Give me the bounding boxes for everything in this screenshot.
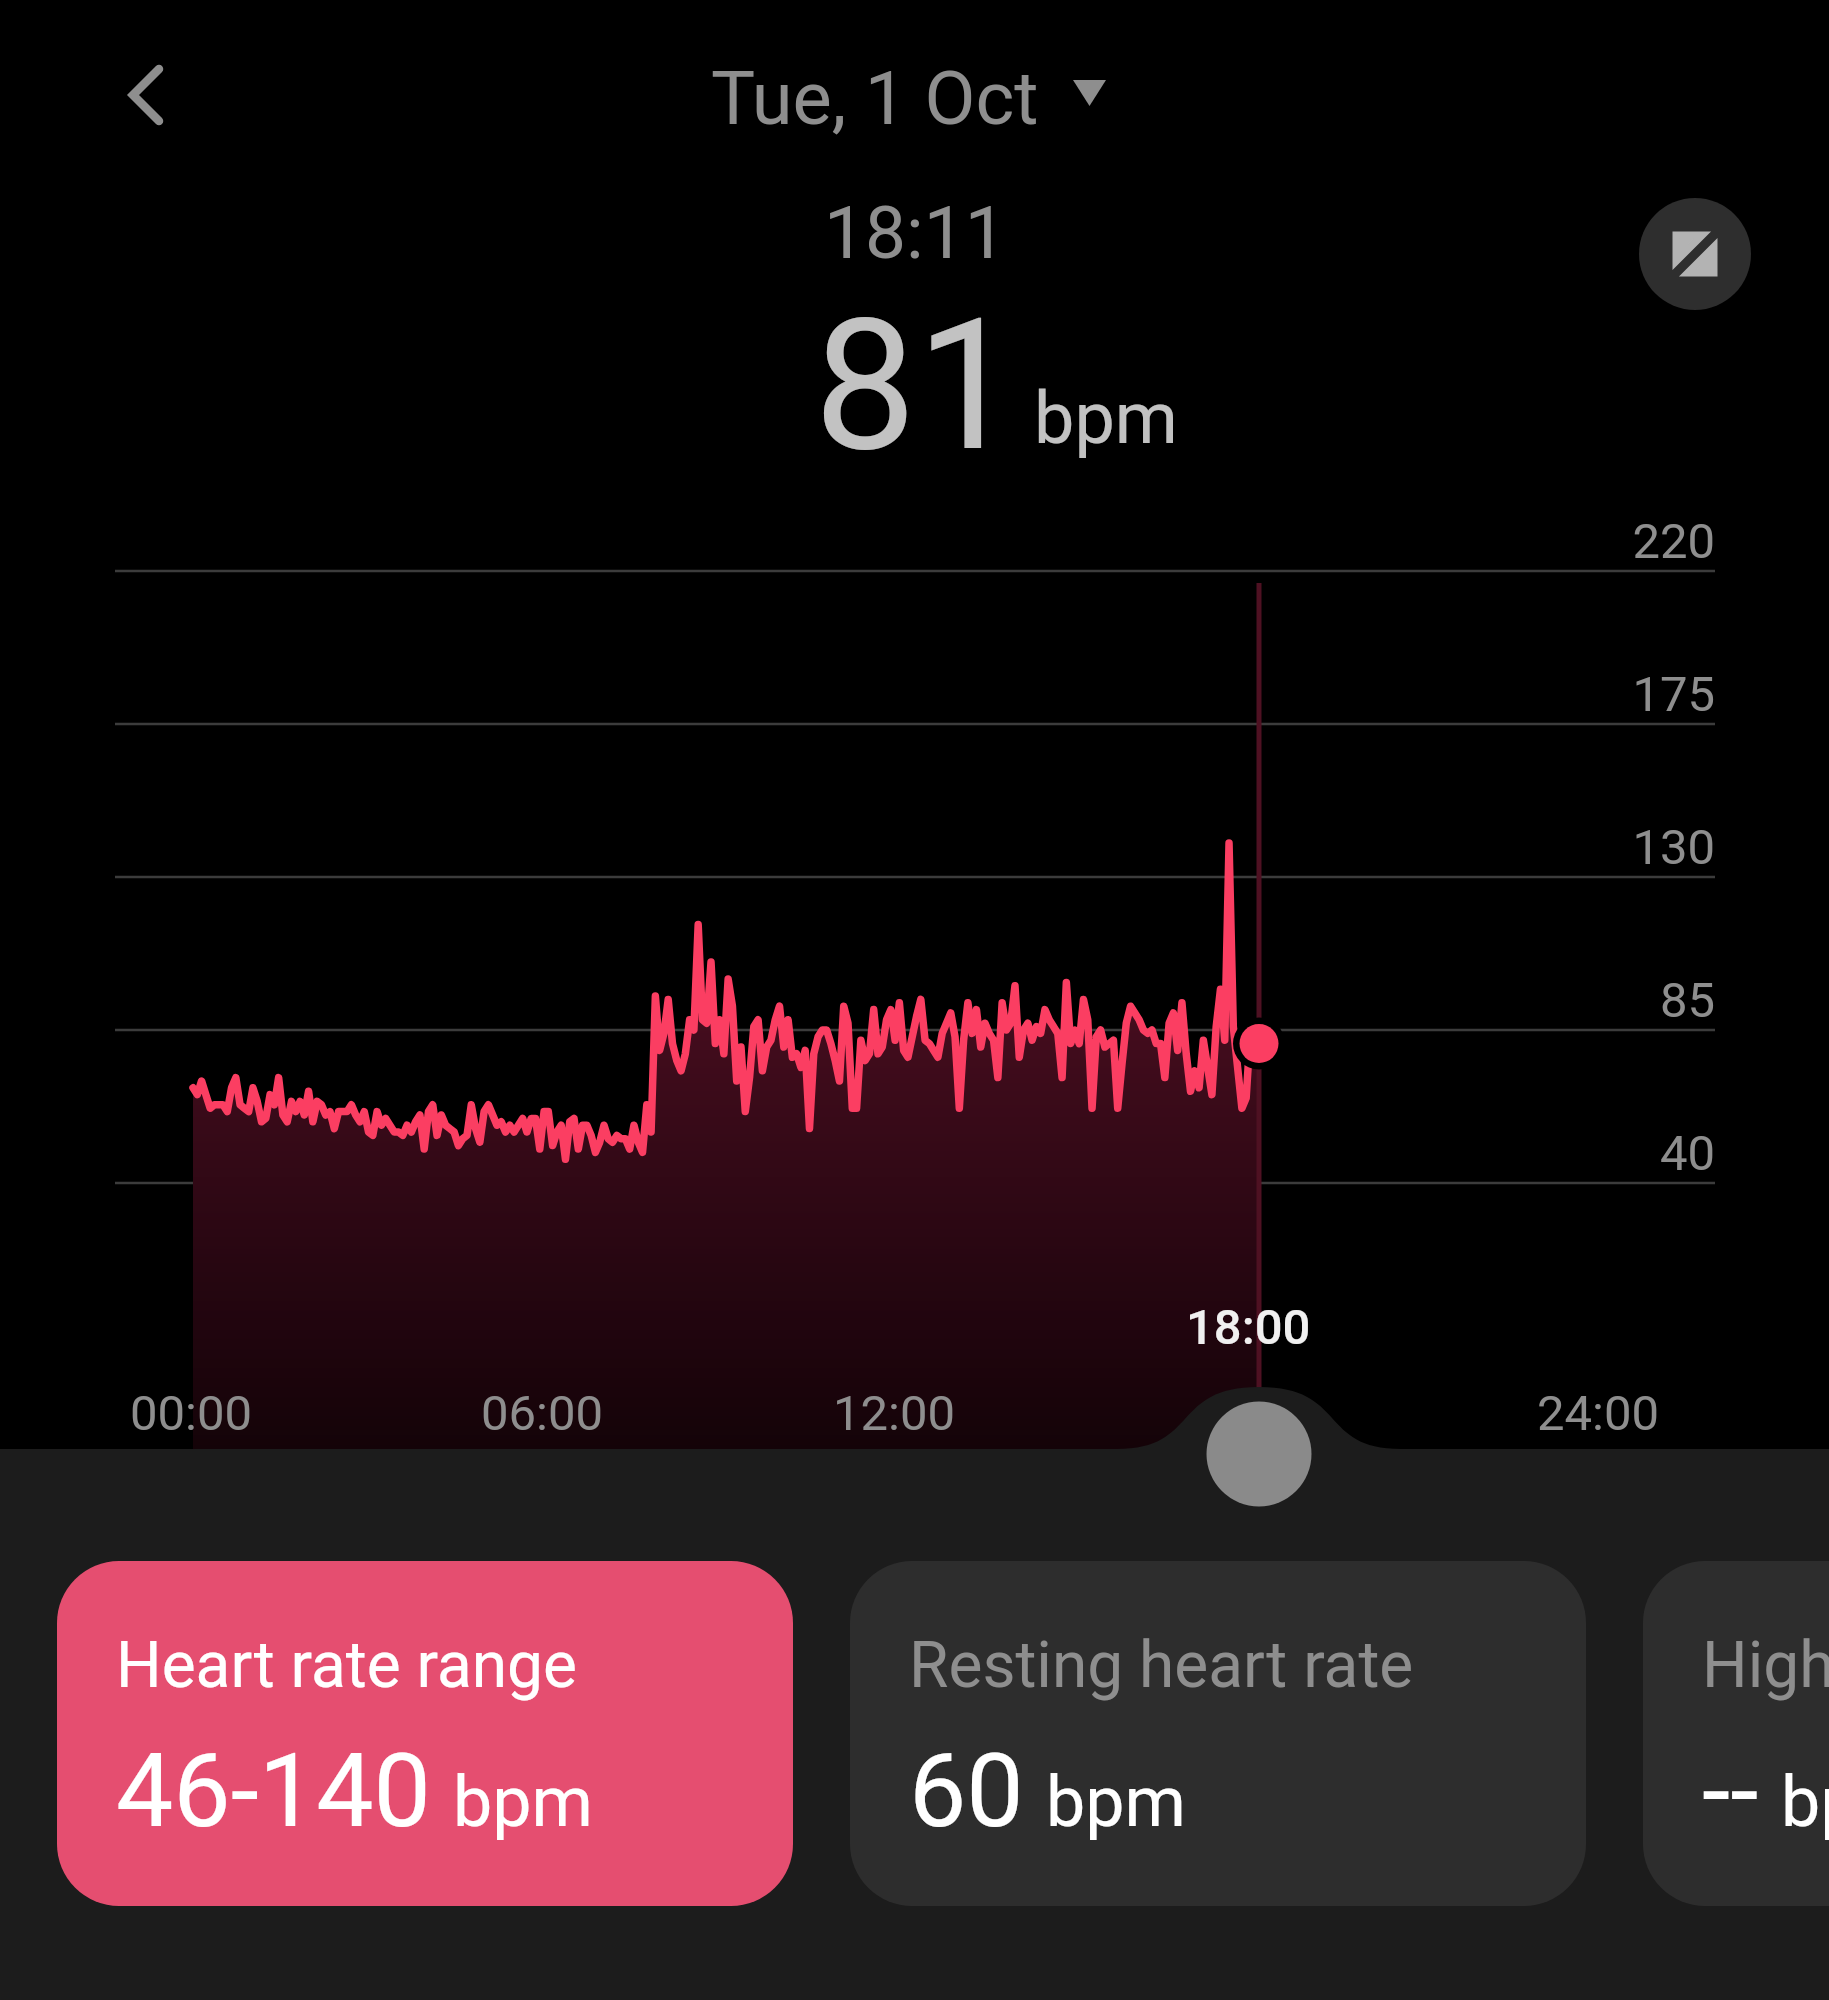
staticText: 175 bbox=[1350, 666, 1715, 723]
staticText: -- bbox=[1702, 1731, 1759, 1851]
staticText: 46-140 bbox=[116, 1731, 431, 1851]
staticText: 24:00 bbox=[1537, 1385, 1660, 1442]
staticText: bpm bbox=[1781, 1761, 1829, 1843]
staticText: 00:00 bbox=[130, 1385, 253, 1442]
staticText: 12:00 bbox=[833, 1385, 956, 1442]
staticText: bpm bbox=[1034, 376, 1178, 460]
staticText: 40 bbox=[1350, 1125, 1715, 1182]
staticText: bpm bbox=[453, 1761, 593, 1843]
staticText: 60 bbox=[909, 1731, 1024, 1851]
staticText: 06:00 bbox=[481, 1385, 604, 1442]
staticText: 220 bbox=[1350, 513, 1715, 570]
staticText: 81 bbox=[814, 279, 1019, 492]
staticText: Heart rate range bbox=[116, 1628, 577, 1703]
staticText: 130 bbox=[1350, 819, 1715, 876]
staticText: Highest bbox=[1702, 1628, 1829, 1703]
staticText: Resting heart rate bbox=[909, 1628, 1414, 1703]
button[interactable]: Navigate up bbox=[86, 38, 198, 150]
button[interactable]: Heart rate range bbox=[57, 1561, 793, 1906]
staticText: Tue, 1 Oct bbox=[711, 55, 1039, 142]
button[interactable]: Highest bbox=[1643, 1561, 1829, 1906]
staticText: 18:11 bbox=[824, 190, 1006, 276]
staticText: 85 bbox=[1350, 972, 1715, 1029]
button[interactable]: Change chart type bbox=[1639, 198, 1751, 310]
staticText: bpm bbox=[1046, 1761, 1186, 1843]
button[interactable]: Tue, 1 Oct bbox=[711, 55, 1106, 142]
staticText: 18:00 bbox=[1186, 1299, 1311, 1356]
button[interactable]: Resting heart rate bbox=[850, 1561, 1586, 1906]
